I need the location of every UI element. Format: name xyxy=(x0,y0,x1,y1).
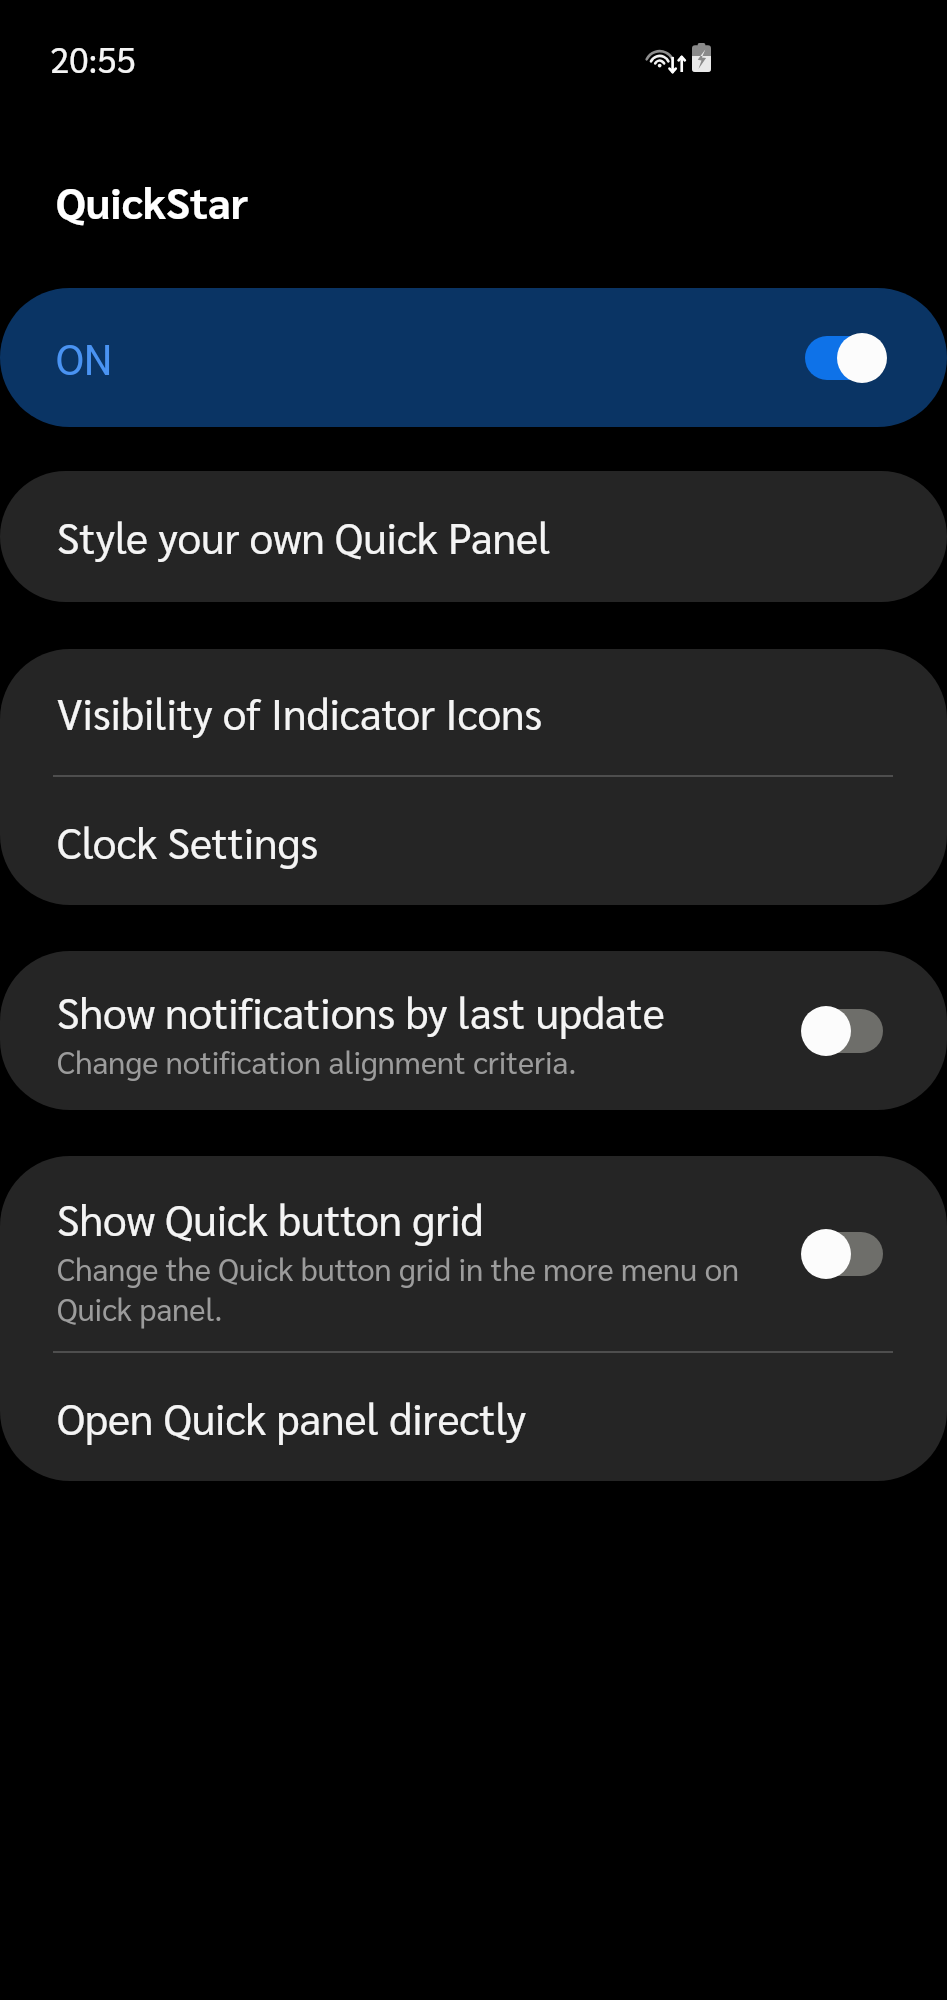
staticText: Change the Quick button grid in the more… xyxy=(57,1248,778,1328)
button[interactable]: Turn off QuickStar xyxy=(792,328,896,388)
staticText: Visibility of Indicator Icons xyxy=(57,685,543,740)
button[interactable]: Visibility of Indicator Icons xyxy=(0,649,947,775)
button[interactable]: Open Quick panel directly xyxy=(0,1353,947,1481)
button[interactable]: ON xyxy=(0,288,947,427)
staticText: Change notification alignment criteria. xyxy=(57,1041,577,1081)
staticText: Style your own Quick Panel xyxy=(57,509,551,564)
staticText: Clock Settings xyxy=(57,814,319,869)
button[interactable]: Show Quick button grid xyxy=(792,1224,896,1284)
button[interactable]: Clock Settings xyxy=(0,777,947,905)
button[interactable]: Style your own Quick Panel xyxy=(0,471,947,602)
button[interactable]: Show notifications by last update xyxy=(792,1001,896,1061)
button[interactable]: Show Quick button grid xyxy=(0,1156,947,1351)
staticText: Show notifications by last update xyxy=(57,984,665,1039)
staticText: 20:55 xyxy=(50,36,136,81)
staticText: Open Quick panel directly xyxy=(57,1390,527,1445)
staticText: ON xyxy=(56,330,113,385)
staticText: Show Quick button grid xyxy=(57,1191,484,1246)
button[interactable]: Show notifications by last update xyxy=(0,951,947,1110)
staticText: QuickStar xyxy=(56,173,249,229)
